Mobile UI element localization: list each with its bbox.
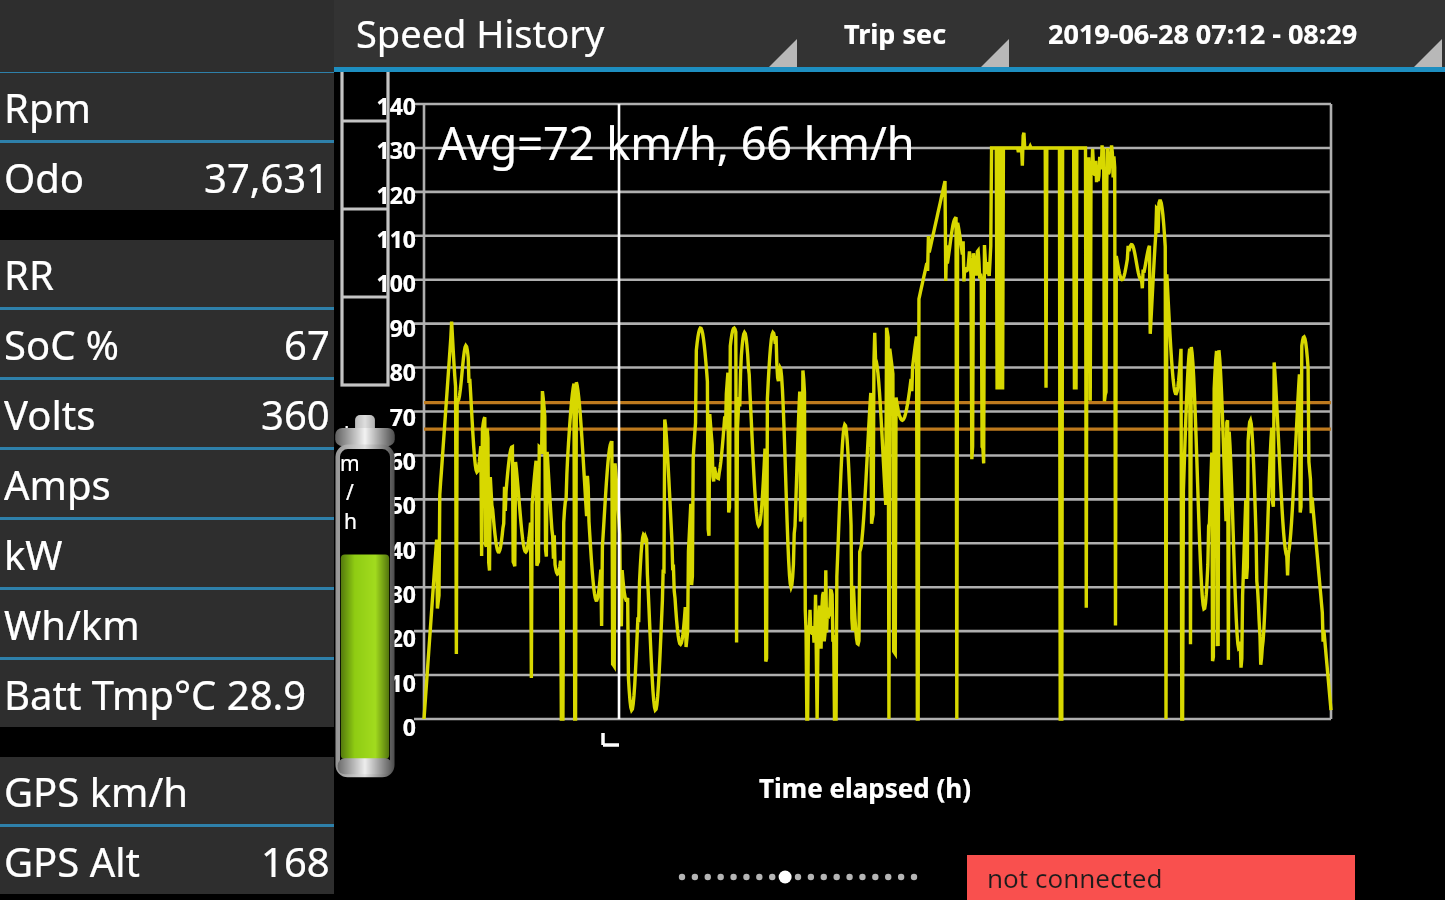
- button[interactable]: kW: [0, 517, 334, 587]
- button[interactable]: 2019-06-28 07:12 - 08:29: [1012, 0, 1445, 72]
- staticText: 10: [334, 667, 416, 698]
- staticText: 20: [334, 622, 416, 653]
- button[interactable]: Speed History: [334, 0, 800, 72]
- button[interactable]: GPS Alt: [0, 824, 334, 894]
- staticText: m: [340, 449, 360, 478]
- staticText: 120: [334, 179, 416, 210]
- button[interactable]: SoC %: [0, 307, 334, 377]
- other: Range segments gauge: [342, 33, 388, 385]
- button[interactable]: Odo: [0, 140, 334, 210]
- staticText: Amps: [4, 457, 111, 511]
- staticText: k: [344, 420, 356, 449]
- staticText: 67: [284, 317, 330, 371]
- staticText: 110: [334, 223, 416, 254]
- staticText: 40: [334, 534, 416, 565]
- staticText: 130: [334, 134, 416, 165]
- staticText: 70: [334, 401, 416, 432]
- staticText: Trip sec: [844, 15, 947, 52]
- staticText: RR: [4, 247, 54, 301]
- staticText: Odo: [4, 150, 85, 204]
- staticText: 168: [261, 834, 330, 888]
- staticText: 140: [334, 90, 416, 121]
- staticText: 2019-06-28 07:12 - 08:29: [1048, 15, 1358, 52]
- button[interactable]: not connected: [967, 855, 1355, 900]
- staticText: GPS km/h: [4, 764, 189, 818]
- staticText: Rpm: [4, 80, 91, 134]
- button[interactable]: GPS km/h: [0, 757, 334, 824]
- staticText: 30: [334, 578, 416, 609]
- staticText: not connected: [987, 860, 1163, 895]
- staticText: 100: [334, 267, 416, 298]
- staticText: Time elapsed (h): [759, 770, 971, 805]
- button[interactable]: Volts: [0, 377, 334, 447]
- other: Battery state of charge 67 percent: [334, 415, 396, 777]
- staticText: 360: [261, 387, 330, 441]
- button[interactable]: Batt Tmp°C 28.9: [0, 657, 334, 727]
- staticText: 0: [334, 711, 416, 742]
- staticText: 80: [334, 356, 416, 387]
- button[interactable]: Wh/km: [0, 587, 334, 657]
- staticText: Avg=72 km/h, 66 km/h: [438, 112, 915, 173]
- staticText: h: [344, 507, 357, 536]
- button[interactable]: Trip sec: [800, 0, 1012, 72]
- staticText: Speed History: [356, 7, 605, 59]
- staticText: Wh/km: [4, 597, 140, 651]
- staticText: Volts: [4, 387, 96, 441]
- staticText: 90: [334, 312, 416, 343]
- staticText: Batt Tmp°C 28.9: [4, 667, 307, 721]
- button[interactable]: Rpm: [0, 70, 334, 140]
- staticText: kW: [4, 527, 63, 581]
- staticText: 50: [334, 489, 416, 520]
- staticText: SoC %: [4, 317, 120, 371]
- button[interactable]: Amps: [0, 447, 334, 517]
- staticText: 60: [334, 445, 416, 476]
- staticText: /: [346, 478, 354, 507]
- staticText: 37,631: [204, 150, 330, 204]
- staticText: GPS Alt: [4, 834, 140, 888]
- button[interactable]: RR: [0, 240, 334, 307]
